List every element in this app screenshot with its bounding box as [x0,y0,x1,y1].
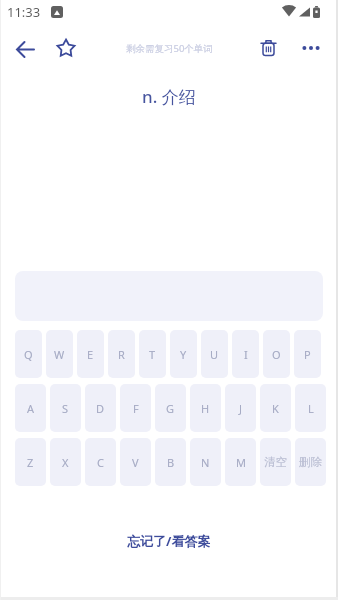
staticText: T [149,347,156,362]
staticText: Z [27,455,34,470]
button[interactable]: D [85,384,116,432]
staticText: 删除 [299,455,322,469]
staticText: J [239,401,243,416]
button[interactable]: Q [15,330,42,378]
staticText: A [27,401,35,416]
staticText: X [62,455,69,470]
staticText: n. 介绍 [142,85,196,108]
button[interactable]: 清空 [260,438,291,486]
button[interactable]: T [139,330,166,378]
staticText: B [167,455,175,470]
button[interactable]: K [260,384,291,432]
button[interactable]: U [201,330,228,378]
button[interactable] [5,29,45,69]
staticText: U [210,347,219,362]
staticText: E [87,347,94,362]
staticText: 11:33 [7,3,41,21]
staticText: Y [180,347,187,362]
staticText: D [96,401,105,416]
button[interactable]: 删除 [295,438,326,486]
button[interactable]: X [50,438,81,486]
staticText: V [132,455,139,470]
button[interactable] [248,28,288,68]
staticText: P [304,347,311,362]
button[interactable]: O [263,330,290,378]
staticText: 剩余需复习50个单词 [126,42,213,55]
button[interactable]: F [120,384,151,432]
button[interactable]: W [46,330,73,378]
button[interactable]: L [295,384,326,432]
button[interactable]: V [120,438,151,486]
staticText: C [97,455,104,470]
staticText: 清空 [264,455,287,469]
staticText: H [201,401,210,416]
button[interactable]: C [85,438,116,486]
staticText: L [308,401,314,416]
button[interactable]: M [225,438,256,486]
button[interactable]: S [50,384,81,432]
staticText: F [133,401,139,416]
staticText: N [201,455,210,470]
staticText: G [166,401,175,416]
button[interactable]: Y [170,330,197,378]
button[interactable]: I [232,330,259,378]
staticText: W [54,347,65,362]
button[interactable] [46,28,86,68]
button[interactable]: A [15,384,46,432]
staticText: K [272,401,279,416]
button[interactable]: J [225,384,256,432]
button[interactable]: R [108,330,135,378]
button[interactable]: Z [15,438,46,486]
button[interactable]: H [190,384,221,432]
button[interactable]: E [77,330,104,378]
button[interactable]: N [190,438,221,486]
staticText: S [62,401,69,416]
staticText: Q [24,347,33,362]
staticText: R [118,347,125,362]
button[interactable]: B [155,438,186,486]
staticText: 忘记了/看答案 [127,532,211,550]
staticText: M [236,455,246,470]
button[interactable] [291,28,331,68]
button[interactable]: P [294,330,321,378]
button[interactable]: 忘记了/看答案 [119,528,219,554]
staticText: I [244,347,248,362]
button[interactable]: G [155,384,186,432]
staticText: O [272,347,281,362]
